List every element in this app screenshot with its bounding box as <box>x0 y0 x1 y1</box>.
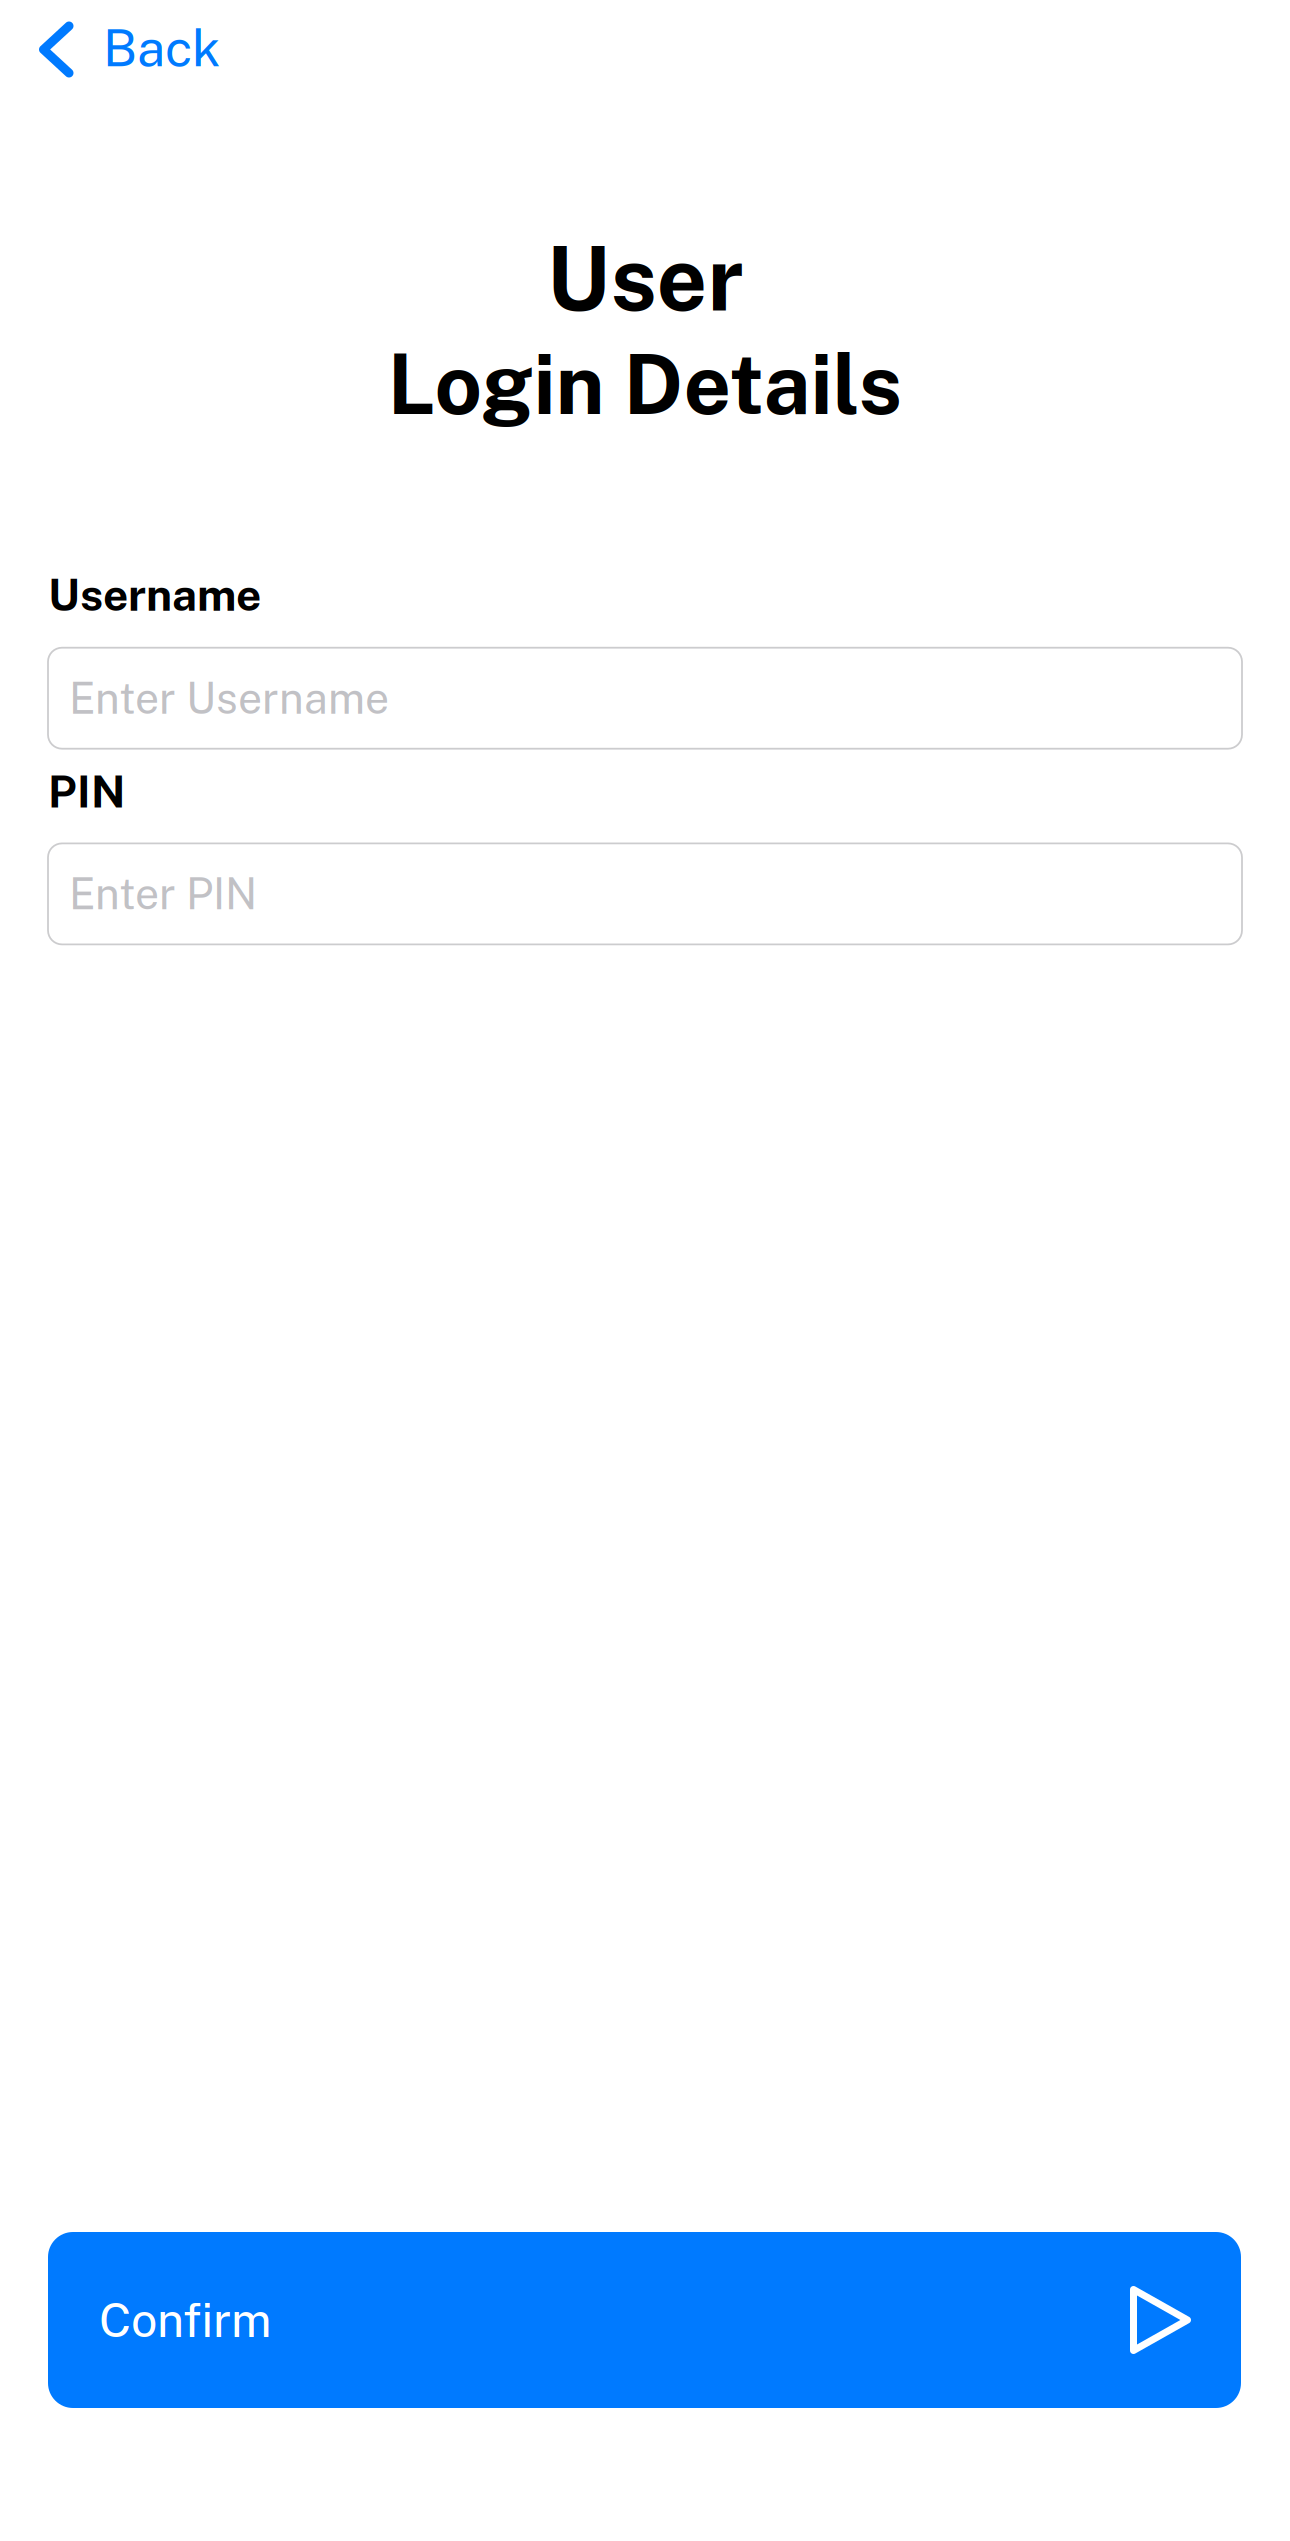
staticText: Enter PIN <box>69 869 257 919</box>
textField[interactable]: Enter PIN <box>48 843 1242 944</box>
staticText: PIN <box>48 766 125 817</box>
textField[interactable]: Enter Username <box>48 648 1242 749</box>
staticText: Back <box>103 18 221 78</box>
button[interactable]: Back <box>0 0 245 96</box>
staticText: User <box>546 227 743 330</box>
staticText: Enter Username <box>69 673 389 723</box>
staticText: Login Details <box>387 335 902 432</box>
button[interactable]: Confirm <box>48 2232 1241 2408</box>
staticText: Confirm <box>99 2293 271 2347</box>
staticText: Username <box>48 569 261 621</box>
